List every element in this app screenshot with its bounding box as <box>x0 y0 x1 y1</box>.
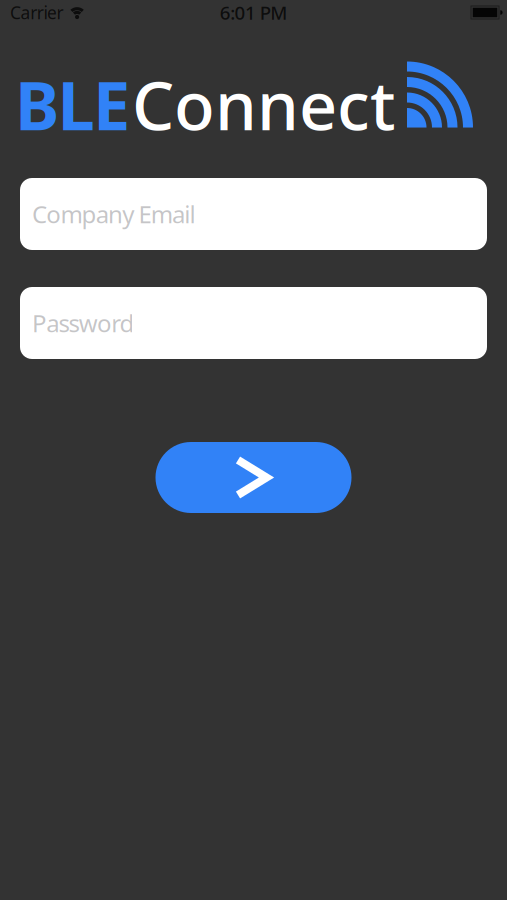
staticText: Company Email <box>32 198 195 230</box>
staticText: Carrier <box>10 1 64 24</box>
button[interactable]: Password <box>20 287 487 359</box>
button[interactable]: Company Email <box>20 178 487 250</box>
staticText: Connect <box>132 60 396 149</box>
staticText: 6:01 PM <box>220 0 287 25</box>
staticText: Password <box>32 307 134 339</box>
staticText: BLE <box>15 60 130 149</box>
button[interactable]: Log In <box>155 442 351 513</box>
